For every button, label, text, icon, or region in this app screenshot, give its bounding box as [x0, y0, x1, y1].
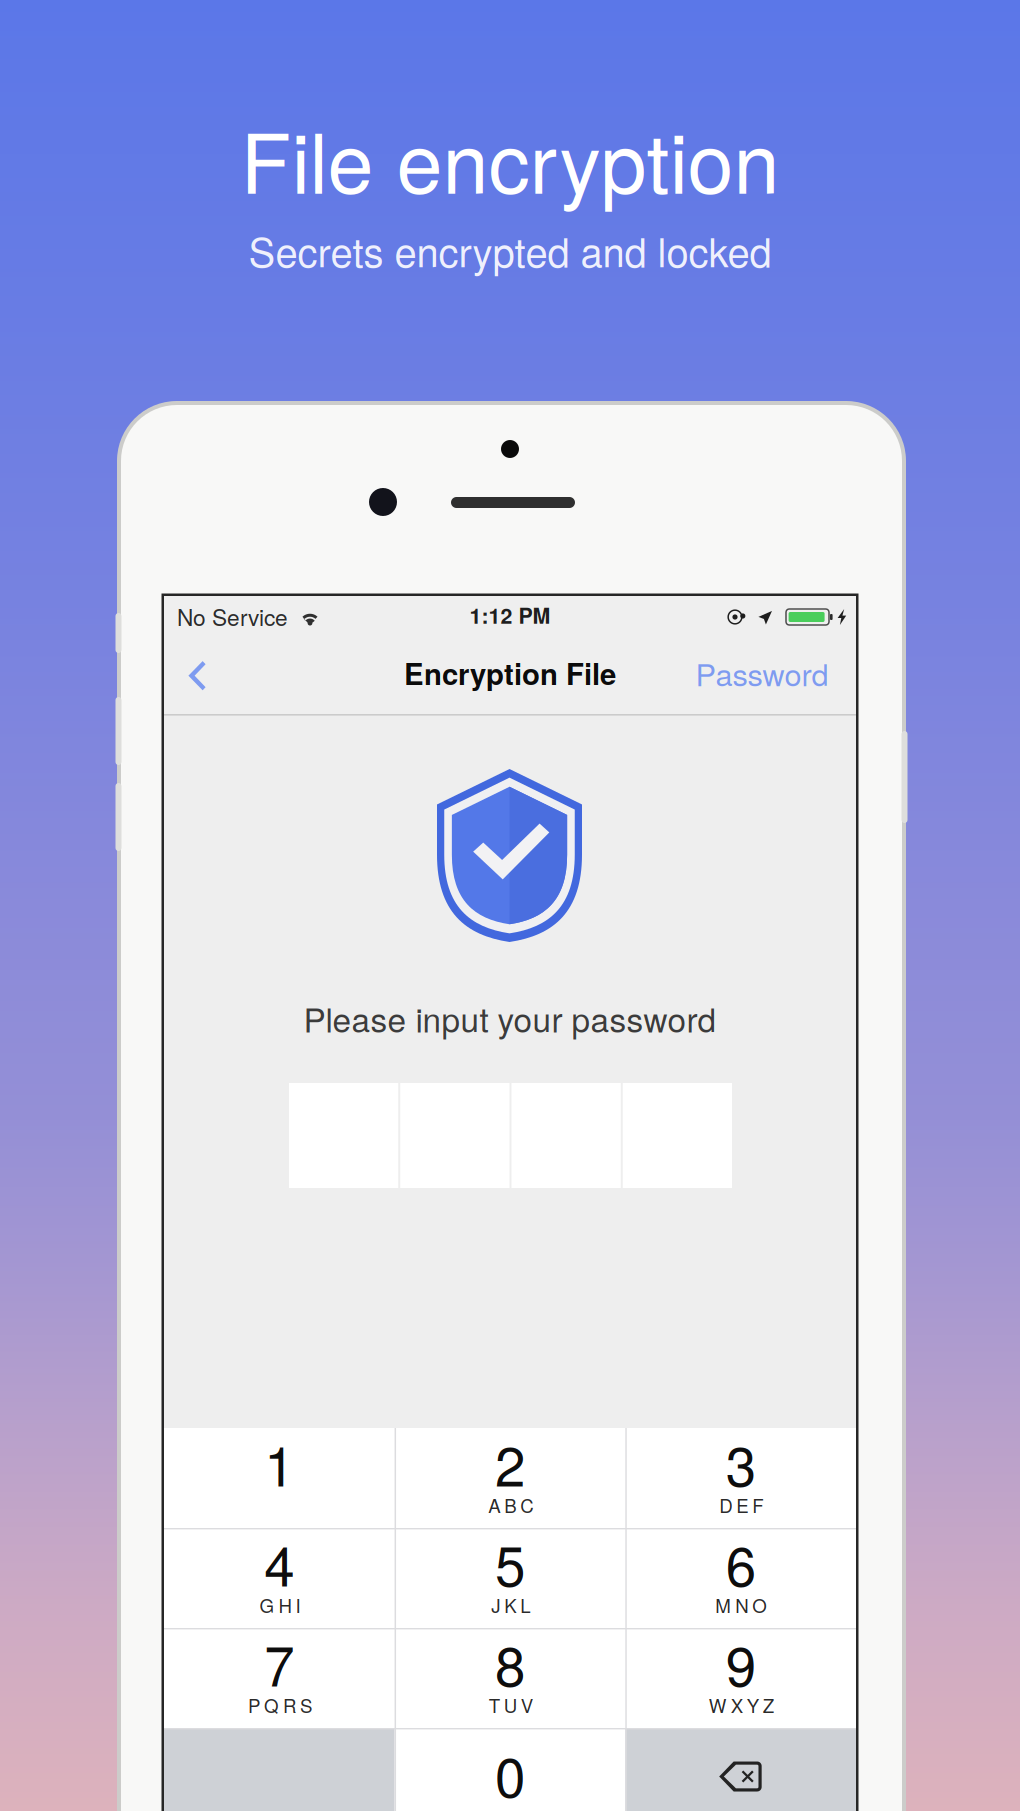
staticText: 8	[495, 1624, 525, 1702]
staticText: Please input your password	[303, 994, 716, 1042]
staticText: W X Y Z	[709, 1692, 774, 1718]
button[interactable]: 2	[395, 1428, 625, 1528]
staticText: P Q R S	[248, 1692, 312, 1718]
staticText: G H I	[259, 1592, 300, 1618]
staticText: 7	[264, 1624, 294, 1702]
staticText: 1	[264, 1424, 294, 1502]
staticText: Secrets encrypted and locked	[248, 221, 771, 279]
staticText: D E F	[719, 1492, 763, 1518]
staticText: 1:12 PM	[469, 600, 550, 630]
button[interactable]: 4	[164, 1528, 395, 1628]
button[interactable]: 9	[625, 1628, 856, 1728]
button[interactable]: 3	[625, 1428, 856, 1528]
staticText: 0	[495, 1735, 525, 1811]
button[interactable]: 5	[395, 1528, 625, 1628]
staticText: 9	[726, 1624, 756, 1702]
staticText: 6	[726, 1524, 756, 1602]
staticText: A B C	[488, 1492, 533, 1518]
button[interactable]: 8	[395, 1628, 625, 1728]
staticText: No Service	[177, 600, 288, 632]
staticText: M N O	[715, 1592, 767, 1618]
staticText: File encryption	[240, 99, 779, 217]
staticText: 2	[495, 1424, 525, 1502]
staticText: 4	[264, 1524, 294, 1602]
button[interactable]: Delete	[625, 1728, 856, 1811]
button[interactable]: 1	[164, 1428, 395, 1528]
button[interactable]: 7	[164, 1628, 395, 1728]
staticText: J K L	[491, 1592, 530, 1618]
button[interactable]: 0	[395, 1728, 625, 1811]
button[interactable]: 6	[625, 1528, 856, 1628]
staticText: T U V	[489, 1692, 533, 1718]
staticText: Encryption File	[404, 652, 616, 694]
staticText: Password	[695, 651, 828, 695]
button[interactable]: Password	[669, 630, 855, 716]
staticText: 3	[726, 1424, 756, 1502]
staticText: 5	[495, 1524, 525, 1602]
button[interactable]: Back	[166, 633, 228, 719]
